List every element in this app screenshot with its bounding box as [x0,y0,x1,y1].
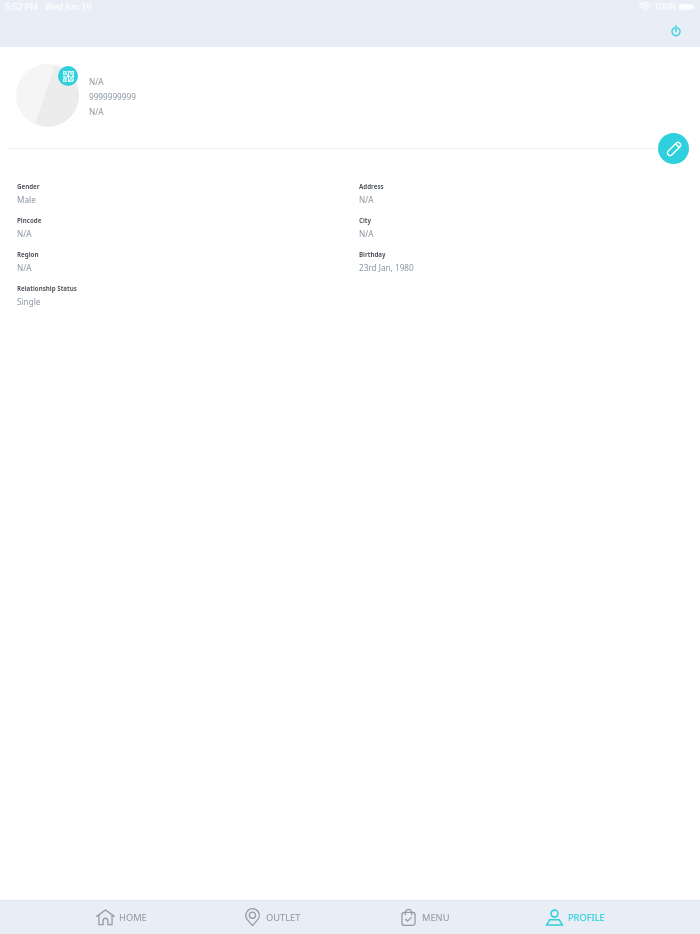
staticText: Region [17,250,39,258]
staticText: 23rd Jan, 1980 [359,262,414,273]
staticText: Male [17,194,36,205]
button[interactable]: HOME [96,900,147,934]
staticText: Pincode [17,216,42,224]
staticText: N/A [359,228,374,239]
staticText: N/A [17,262,32,273]
staticText: N/A [359,194,374,205]
staticText: MENU [422,911,450,924]
staticText: Single [17,296,41,307]
staticText: HOME [119,911,147,924]
staticText: 5:52 PM Wed Jun 19 [5,1,92,13]
staticText: Gender [17,182,40,190]
staticText: Birthday [359,250,386,258]
staticText: City [359,216,372,224]
staticText: OUTLET [266,911,301,924]
staticText: N/A [89,76,104,87]
button[interactable]: Show QR code [58,66,78,86]
button[interactable]: OUTLET [243,900,301,934]
staticText: PROFILE [568,911,605,924]
staticText: Address [359,182,384,190]
button[interactable]: MENU [399,900,450,934]
staticText: 9999999999 [89,91,136,102]
staticText: Relationship Status [17,284,77,292]
staticText: N/A [89,106,104,117]
staticText: 100% [654,1,677,13]
staticText: N/A [17,228,32,239]
button[interactable]: PROFILE [545,900,605,934]
button[interactable]: Logout [664,19,688,43]
button[interactable]: Edit profile [658,133,689,164]
button[interactable]: Profile picture [16,64,79,127]
